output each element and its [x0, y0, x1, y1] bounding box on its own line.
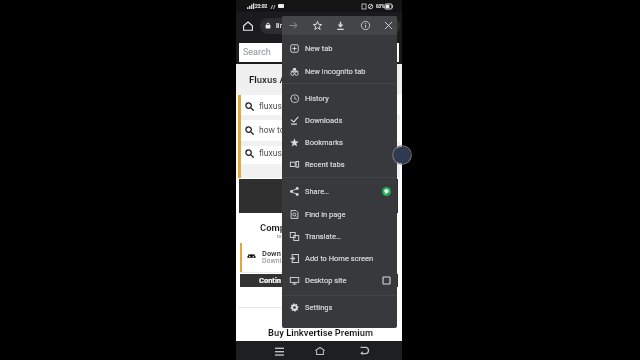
staticText: Desktop site [305, 276, 347, 285]
staticText: Bookmarks [305, 138, 343, 147]
button[interactable]: Translate… [282, 225, 397, 247]
button[interactable]: Downloads [282, 109, 397, 131]
button[interactable]: Add to Home screen [282, 247, 397, 269]
staticText: Translate… [305, 232, 342, 241]
staticText: Settings [305, 303, 333, 312]
button[interactable]: Close [380, 16, 397, 35]
button[interactable]: Recent apps [270, 341, 288, 360]
staticText: Contin [259, 276, 282, 285]
staticText: 22:02 [255, 3, 268, 9]
button[interactable]: Forward [285, 16, 302, 35]
button[interactable]: fluxus [236, 143, 402, 163]
staticText: New incognito tab [305, 67, 366, 76]
staticText: how to [259, 125, 285, 135]
button[interactable]: how to [236, 120, 402, 140]
button[interactable]: Home [311, 341, 329, 360]
button[interactable]: Bookmarks [282, 131, 397, 153]
staticText: Find in page [305, 210, 346, 219]
button[interactable]: Settings [282, 296, 397, 318]
staticText: fluxus [259, 148, 282, 158]
staticText: lin [276, 21, 284, 29]
staticText: Buy Linkvertise Premium [268, 327, 373, 338]
button[interactable]: Recent tabs [282, 153, 397, 175]
button[interactable]: New tab [282, 37, 397, 59]
button[interactable] [260, 18, 400, 34]
staticText: Search [243, 47, 271, 58]
button[interactable]: History [282, 87, 397, 109]
button[interactable]: Home [240, 18, 256, 34]
button[interactable]: New incognito tab [282, 60, 397, 82]
staticText: fluxus [259, 101, 282, 111]
button[interactable]: Share… [282, 180, 397, 202]
button[interactable]: Page info [357, 16, 374, 35]
staticText: Down [262, 249, 281, 258]
staticText: Share… [305, 187, 330, 196]
staticText: Add to Home screen [305, 254, 374, 263]
button[interactable]: Download page [332, 16, 349, 35]
button[interactable]: Desktop site [282, 269, 397, 291]
button[interactable]: Back [355, 341, 373, 360]
staticText: 63% [376, 4, 385, 9]
button[interactable]: Bookmark this page [309, 16, 326, 35]
staticText: to [277, 233, 282, 239]
button[interactable]: Find in page [282, 203, 397, 225]
staticText: History [305, 94, 329, 103]
staticText: Recent tabs [305, 160, 345, 169]
button[interactable]: fluxus [236, 96, 402, 116]
staticText: Fluxus A [249, 74, 286, 85]
staticText: New tab [305, 44, 333, 53]
staticText: Comp [260, 222, 286, 233]
staticText: Downloads [305, 116, 343, 125]
staticText: Downlo [262, 257, 286, 265]
